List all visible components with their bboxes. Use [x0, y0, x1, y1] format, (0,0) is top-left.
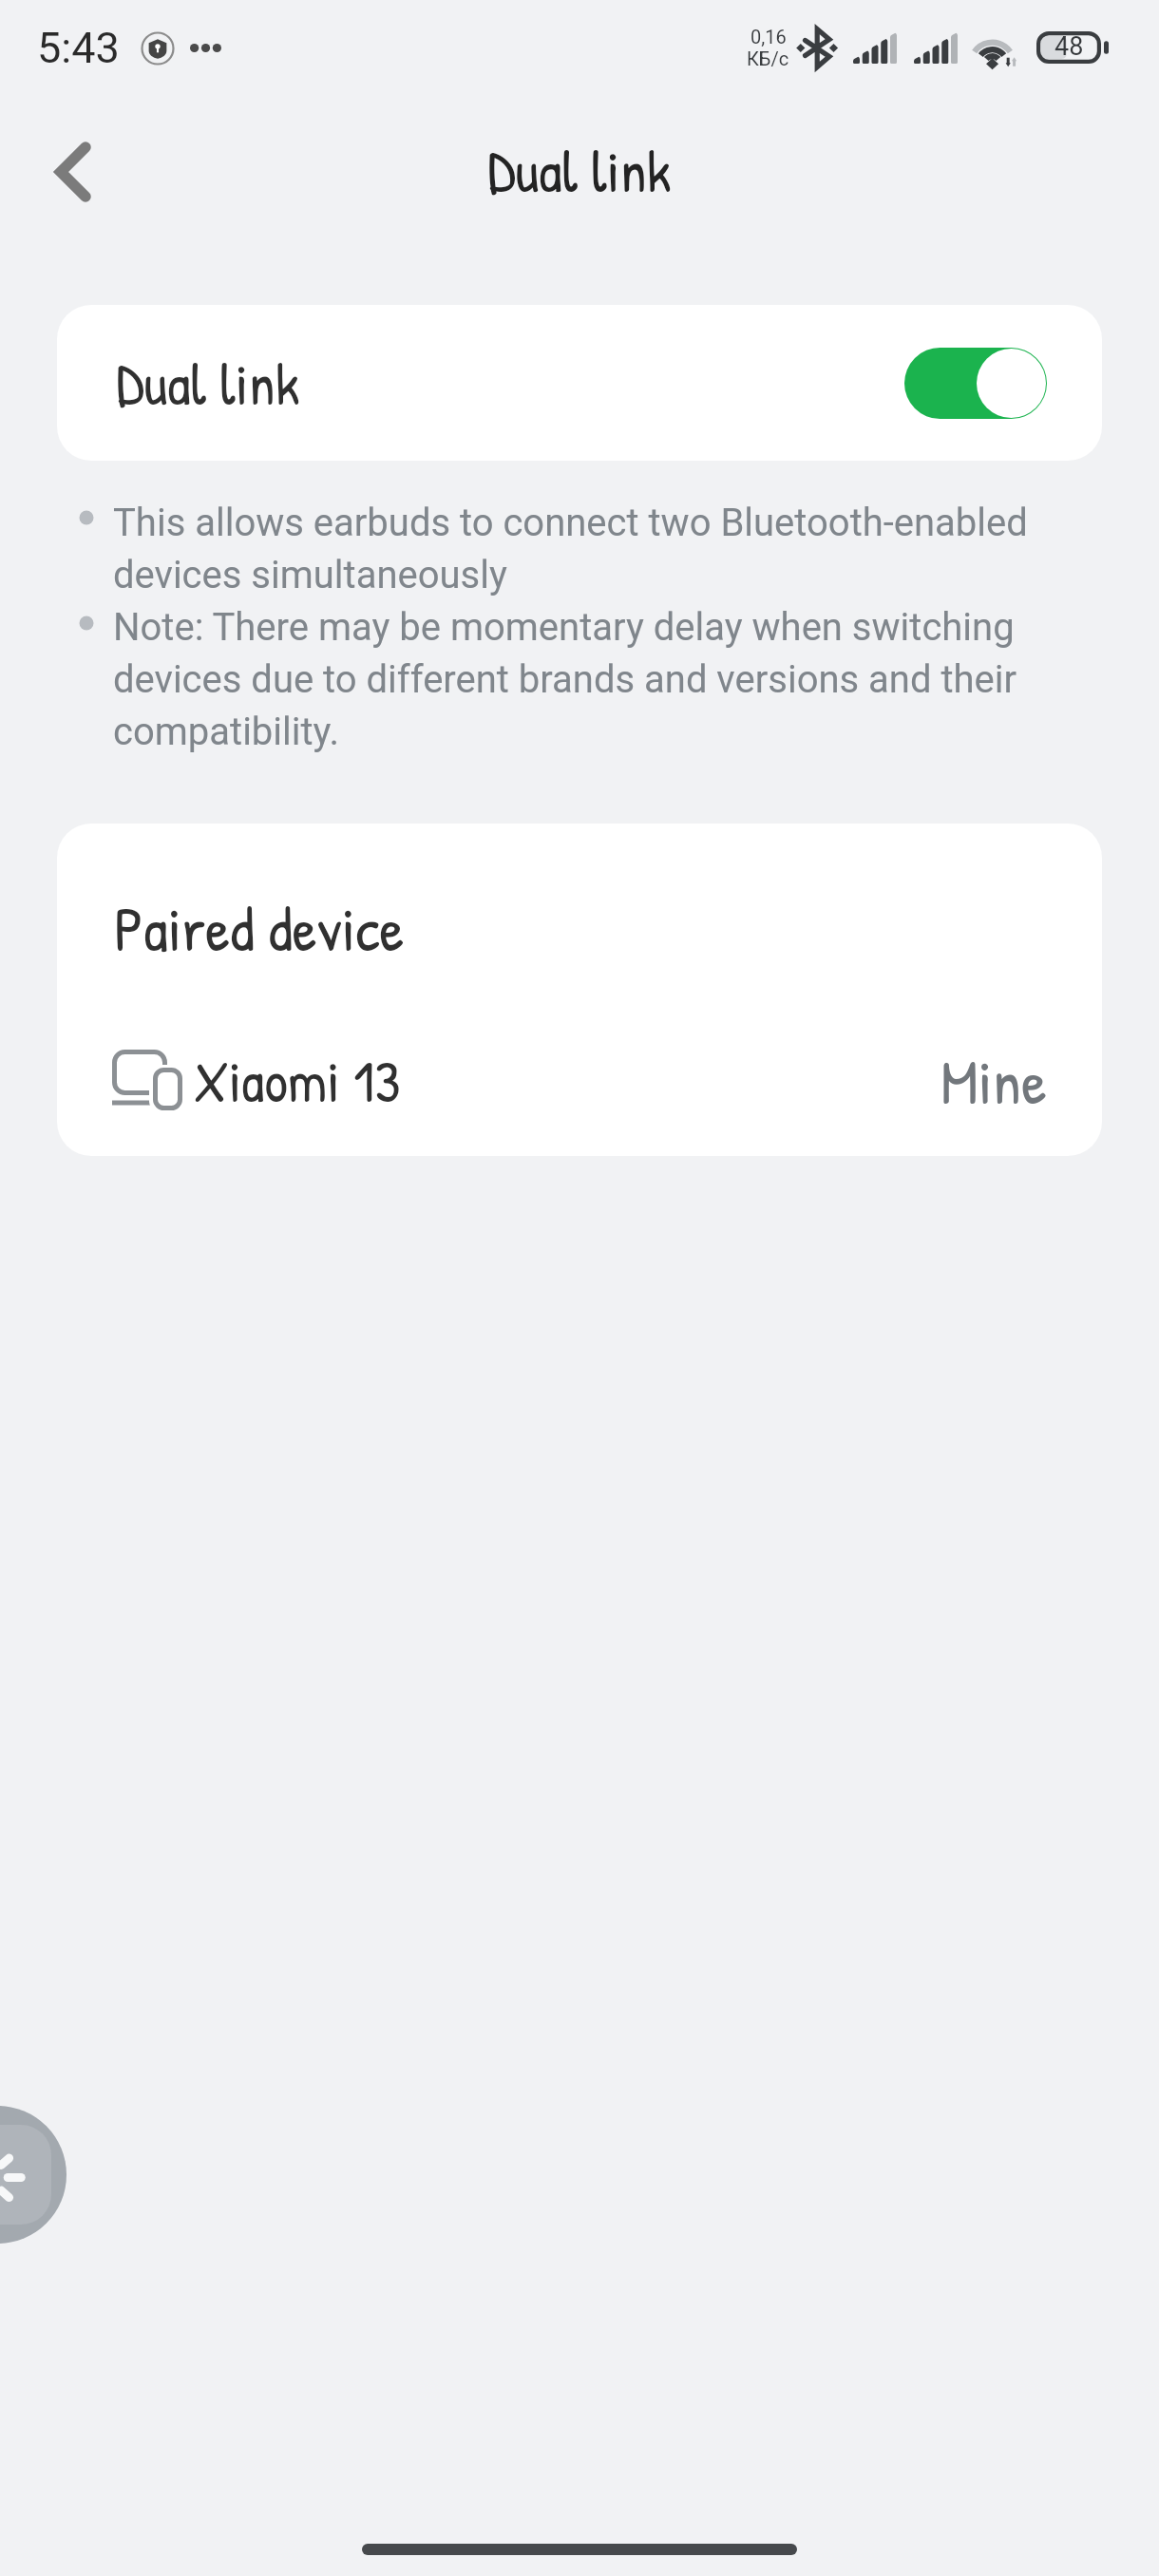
staticText: Paired device	[114, 886, 405, 970]
staticText: Dual link	[116, 343, 300, 423]
staticText: Note: There may be momentary delay when …	[113, 605, 1015, 650]
staticText: КБ/с	[747, 47, 789, 69]
staticText: 48	[1054, 31, 1084, 62]
button[interactable]: Back	[16, 115, 130, 229]
button[interactable]: Xiaomi 13	[57, 1004, 1102, 1156]
staticText: Xiaomi 13	[194, 1041, 401, 1120]
staticText: 0,16	[750, 26, 787, 47]
staticText: devices simultaneously	[113, 553, 507, 597]
staticText: 5:43	[37, 23, 120, 73]
button[interactable]: Floating assistant	[0, 2106, 66, 2244]
button[interactable]: Dual link	[57, 305, 1102, 461]
button[interactable]: Dual link toggle	[904, 348, 1047, 419]
staticText: compatibility.	[113, 710, 339, 754]
staticText: This allows earbuds to connect two Bluet…	[113, 501, 1028, 545]
staticText: Mine	[940, 1037, 1047, 1124]
staticText: devices due to different brands and vers…	[113, 657, 1017, 702]
staticText: Dual link	[487, 130, 672, 210]
